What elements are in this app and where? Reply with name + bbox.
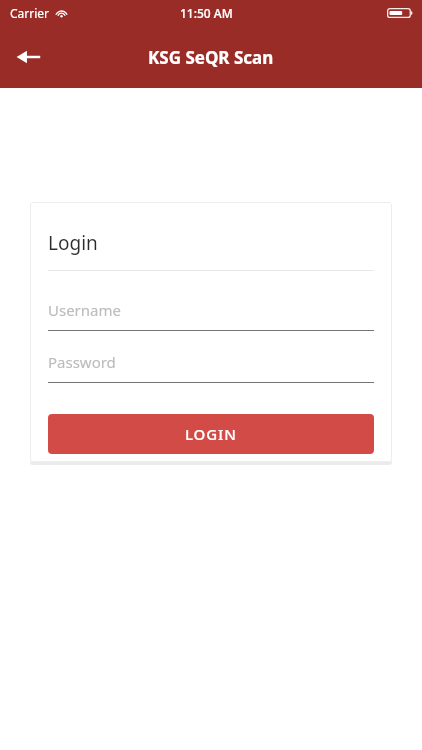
staticText: KSG SeQR Scan — [148, 46, 274, 69]
staticText: Carrier — [10, 5, 50, 21]
button[interactable]: Password — [48, 351, 374, 383]
button[interactable]: Back — [6, 35, 50, 79]
staticText: LOGIN — [185, 424, 237, 444]
button[interactable]: Username — [48, 299, 374, 331]
staticText: Username — [48, 300, 121, 320]
staticText: Login — [48, 230, 98, 256]
staticText: Password — [48, 352, 116, 372]
button[interactable]: LOGIN — [48, 414, 374, 454]
staticText: 11:50 AM — [180, 5, 233, 21]
